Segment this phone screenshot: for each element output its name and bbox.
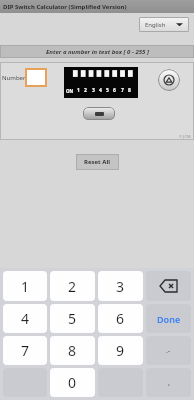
staticText: Done xyxy=(157,313,181,325)
button[interactable]: 0 xyxy=(50,368,95,397)
button[interactable]: 1 xyxy=(3,271,47,301)
staticText: 4 xyxy=(21,309,30,328)
button[interactable]: English xyxy=(139,17,189,32)
button[interactable]: Info xyxy=(158,69,180,91)
staticText: 8 xyxy=(128,87,131,94)
button[interactable]: 6 xyxy=(98,304,143,333)
button[interactable]: Switch view xyxy=(83,107,115,120)
button[interactable]: 8 xyxy=(50,336,95,365)
staticText: 0 xyxy=(68,373,77,392)
staticText: Enter a number in text box [ 0 - 255 ] xyxy=(46,48,149,56)
button[interactable] xyxy=(25,68,47,87)
staticText: 2 xyxy=(68,277,77,296)
staticText: ON xyxy=(66,88,74,94)
staticText: 6 xyxy=(116,309,125,328)
button[interactable]: Backspace xyxy=(146,271,191,301)
button[interactable]: 3 xyxy=(98,271,143,301)
staticText: 8 xyxy=(68,341,77,360)
staticText: 9 xyxy=(116,341,125,360)
button[interactable]: 2 xyxy=(50,271,95,301)
staticText: English xyxy=(145,21,166,29)
staticText: 6 xyxy=(113,87,116,94)
staticText: 7 xyxy=(121,87,124,94)
button[interactable]: 7 xyxy=(3,336,47,365)
staticText: , xyxy=(168,378,170,388)
staticText: © JCM xyxy=(179,134,191,139)
button[interactable]: 4 xyxy=(3,304,47,333)
staticText: 3 xyxy=(116,277,125,296)
button[interactable]: .- xyxy=(146,336,191,365)
staticText: 5 xyxy=(68,309,77,328)
button[interactable]: Reset All xyxy=(76,154,119,170)
staticText: 4 xyxy=(99,87,102,94)
staticText: 3 xyxy=(92,87,95,94)
button[interactable]: 5 xyxy=(50,304,95,333)
staticText: Reset All xyxy=(84,158,111,166)
button[interactable]: 9 xyxy=(98,336,143,365)
staticText: 2 xyxy=(84,87,87,94)
staticText: 1 xyxy=(77,87,80,94)
staticText: .- xyxy=(166,346,171,356)
staticText: 1 xyxy=(21,277,30,296)
staticText: 5 xyxy=(106,87,109,94)
staticText: Number: xyxy=(2,74,28,82)
staticText: 7 xyxy=(21,341,30,360)
button[interactable]: Done xyxy=(146,304,191,333)
staticText: DIP Switch Calculator (Simplified Versio… xyxy=(3,3,127,11)
